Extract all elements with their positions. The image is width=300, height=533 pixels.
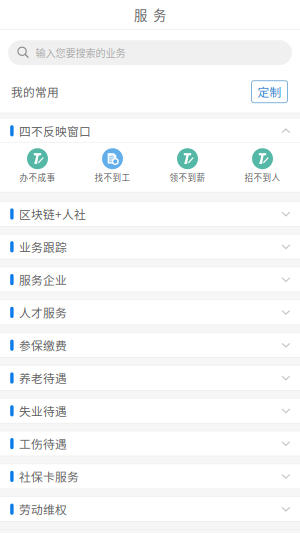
button[interactable]: 人才服务: [0, 300, 300, 324]
button[interactable]: 社保卡服务: [0, 464, 300, 488]
button[interactable]: 养老待遇: [0, 366, 300, 390]
staticText: 四不反映窗口: [19, 122, 91, 139]
button[interactable]: 区块链+人社: [0, 202, 300, 226]
button[interactable]: 办不成事: [0, 143, 75, 192]
staticText: 参保缴费: [19, 337, 67, 354]
staticText: 失业待遇: [19, 402, 67, 419]
button[interactable]: 参保缴费: [0, 333, 300, 357]
staticText: 定制: [257, 83, 281, 100]
button[interactable]: 找不到工: [75, 143, 150, 192]
staticText: 社保卡服务: [19, 468, 79, 485]
staticText: 我的常用: [11, 83, 59, 100]
staticText: 养老待遇: [19, 369, 67, 386]
staticText: 工伤待遇: [19, 435, 67, 452]
button[interactable]: 服务企业: [0, 267, 300, 292]
button[interactable]: 工伤待遇: [0, 431, 300, 456]
staticText: 服 务: [134, 5, 166, 24]
button[interactable]: 领不到薪: [150, 143, 225, 192]
button[interactable]: 定制: [251, 81, 287, 103]
staticText: 业务跟踪: [19, 238, 67, 255]
staticText: 输入您要搜索的业务: [35, 45, 125, 60]
button[interactable]: 四不反映窗口: [0, 119, 300, 143]
staticText: 人才服务: [19, 304, 67, 321]
staticText: 找不到工: [94, 171, 130, 184]
button[interactable]: 劳动维权: [0, 497, 300, 521]
button[interactable]: 失业待遇: [0, 399, 300, 423]
staticText: 服务企业: [19, 271, 67, 288]
button[interactable]: 招不到人: [225, 143, 300, 192]
staticText: 招不到人: [244, 171, 280, 184]
staticText: 领不到薪: [169, 171, 205, 184]
button[interactable]: 业务跟踪: [0, 235, 300, 259]
staticText: 区块链+人社: [19, 205, 86, 222]
staticText: 劳动维权: [19, 501, 67, 518]
staticText: 办不成事: [19, 171, 55, 184]
